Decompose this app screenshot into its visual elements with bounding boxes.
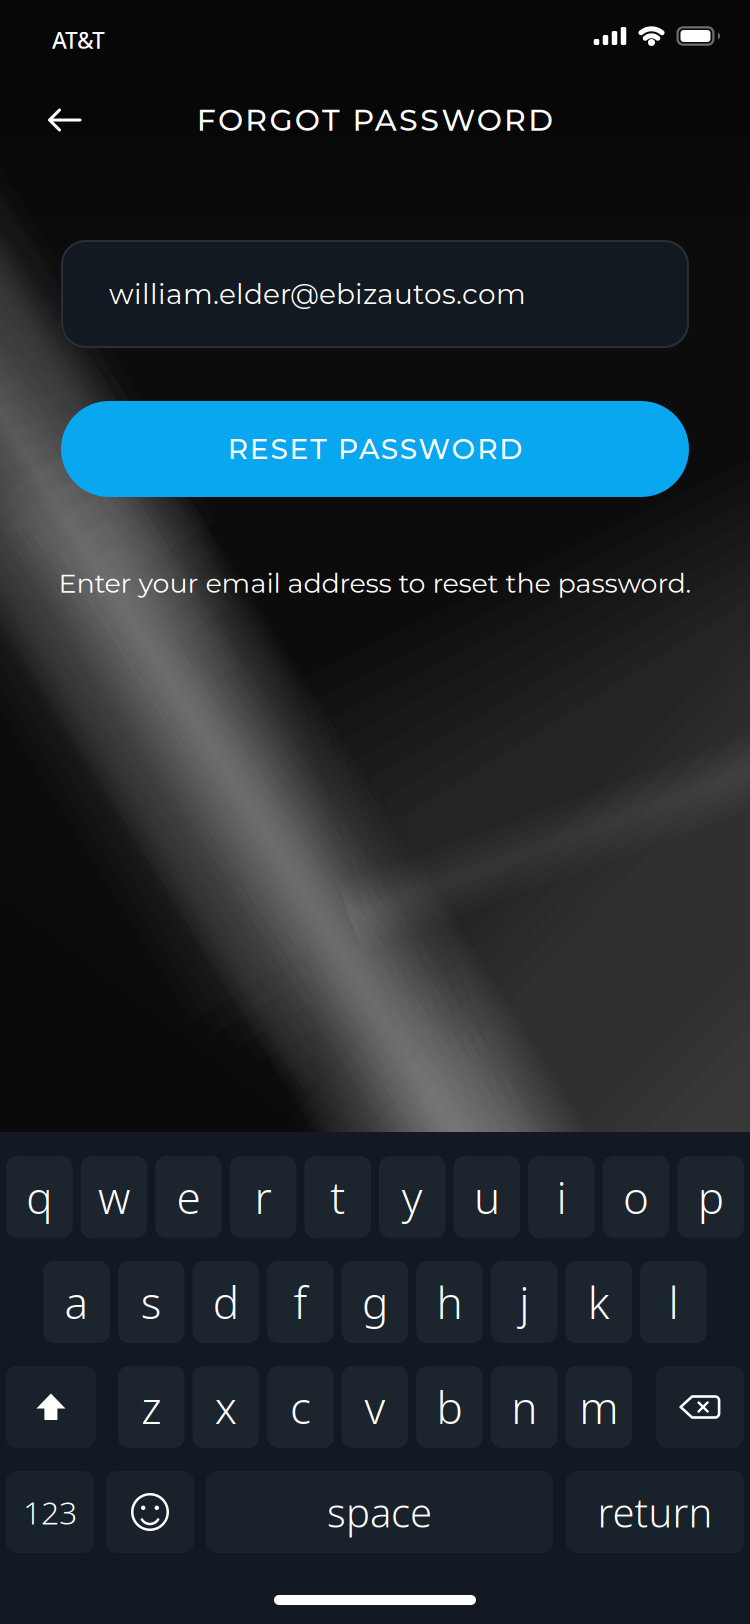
staticText: c (290, 1378, 311, 1436)
staticText: k (588, 1273, 610, 1331)
staticText: o (623, 1168, 649, 1226)
button[interactable]: space (206, 1471, 553, 1553)
button[interactable]: q (6, 1156, 73, 1238)
button[interactable]: f (267, 1261, 334, 1343)
button[interactable]: return (566, 1471, 744, 1553)
staticText: g (362, 1273, 388, 1331)
staticText: n (511, 1378, 537, 1436)
button[interactable]: a (43, 1261, 110, 1343)
staticText: w (98, 1168, 130, 1226)
button[interactable]: l (640, 1261, 707, 1343)
button[interactable]: william.elder@ebizautos.com (61, 240, 689, 348)
button[interactable]: j (491, 1261, 557, 1343)
button[interactable]: RESET PASSWORD (61, 401, 689, 497)
button[interactable]: o (603, 1156, 669, 1238)
staticText: q (26, 1168, 52, 1226)
staticText: b (437, 1378, 463, 1436)
staticText: z (141, 1378, 161, 1436)
button[interactable]: y (379, 1156, 446, 1238)
button[interactable]: n (491, 1366, 557, 1448)
staticText: d (213, 1273, 239, 1331)
button[interactable] (47, 108, 81, 132)
button[interactable]: u (454, 1156, 520, 1238)
button[interactable] (6, 1366, 96, 1448)
staticText: h (437, 1273, 463, 1331)
staticText: r (255, 1168, 272, 1226)
staticText: Enter your email address to reset the pa… (58, 566, 691, 599)
button[interactable]: r (230, 1156, 296, 1238)
button[interactable] (656, 1366, 744, 1448)
staticText: x (215, 1378, 237, 1436)
staticText: s (141, 1273, 162, 1331)
button[interactable]: g (342, 1261, 408, 1343)
button[interactable]: p (677, 1156, 744, 1238)
staticText: RESET PASSWORD (228, 432, 522, 466)
staticText: u (474, 1168, 500, 1226)
button[interactable]: d (192, 1261, 259, 1343)
staticText: m (579, 1378, 618, 1436)
button[interactable]: e (155, 1156, 222, 1238)
staticText: a (65, 1273, 89, 1331)
staticText: space (327, 1485, 432, 1538)
button[interactable]: v (342, 1366, 408, 1448)
staticText: e (176, 1168, 200, 1226)
staticText: william.elder@ebizautos.com (109, 277, 526, 311)
button[interactable]: z (118, 1366, 184, 1448)
staticText: j (519, 1273, 529, 1331)
button[interactable] (274, 1595, 476, 1605)
staticText: i (556, 1168, 566, 1226)
button[interactable]: t (304, 1156, 371, 1238)
button[interactable] (106, 1471, 194, 1553)
staticText: return (597, 1485, 712, 1538)
button[interactable]: s (118, 1261, 184, 1343)
button[interactable]: m (565, 1366, 632, 1448)
staticText: y (402, 1168, 423, 1226)
button[interactable]: w (81, 1156, 147, 1238)
staticText: l (668, 1273, 678, 1331)
staticText: t (330, 1168, 345, 1226)
staticText: v (364, 1378, 385, 1436)
button[interactable]: x (192, 1366, 259, 1448)
staticText: AT&T (52, 25, 105, 55)
button[interactable]: b (416, 1366, 483, 1448)
button[interactable]: k (565, 1261, 632, 1343)
button[interactable]: h (416, 1261, 483, 1343)
staticText: f (293, 1273, 307, 1331)
staticText: 123 (23, 1491, 77, 1533)
button[interactable]: c (267, 1366, 334, 1448)
button[interactable]: 123 (6, 1471, 94, 1553)
button[interactable]: i (528, 1156, 595, 1238)
staticText: p (698, 1168, 724, 1226)
staticText: FORGOT PASSWORD (197, 102, 553, 138)
